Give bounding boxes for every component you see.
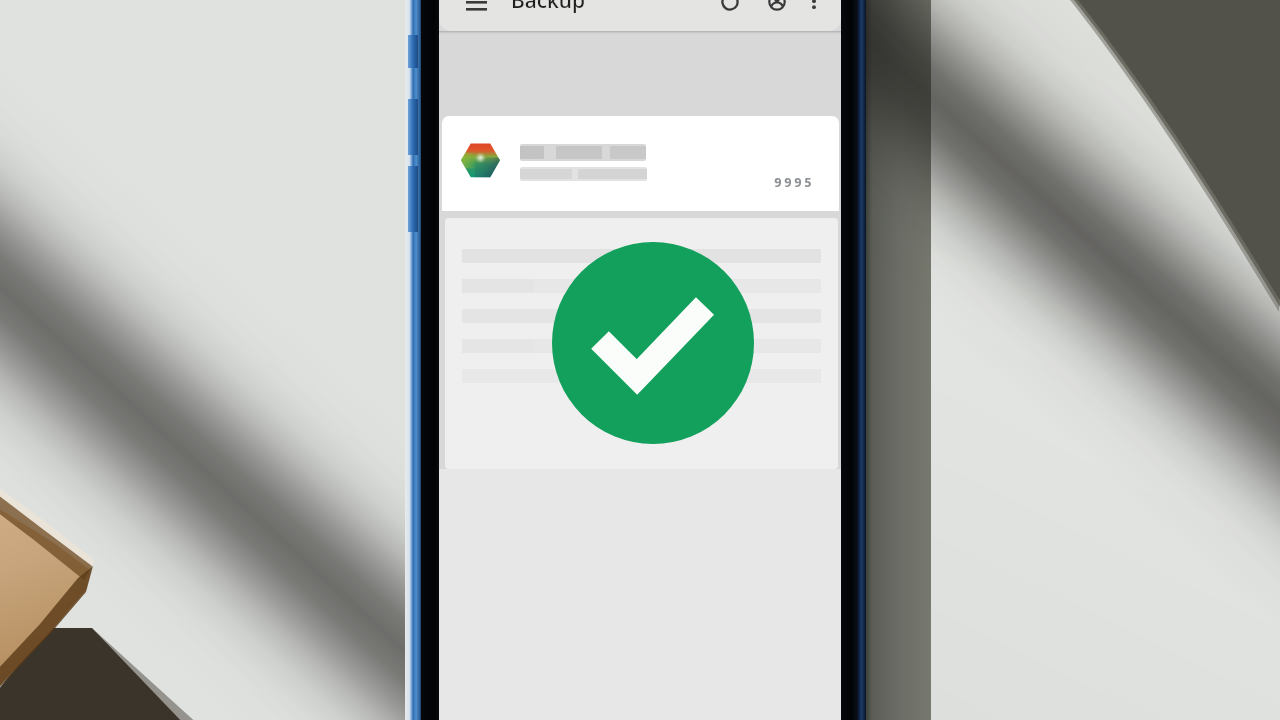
button[interactable]: 9995	[442, 116, 839, 211]
staticText: 9995	[774, 173, 815, 191]
button[interactable]: Account	[757, 0, 797, 19]
button[interactable]: Backup complete	[552, 242, 754, 444]
button[interactable]: Menu	[456, 0, 496, 19]
button[interactable]: More options	[798, 0, 830, 17]
staticText: Backup	[511, 0, 585, 15]
button[interactable]: Restore	[710, 0, 750, 19]
button[interactable]	[445, 218, 838, 469]
